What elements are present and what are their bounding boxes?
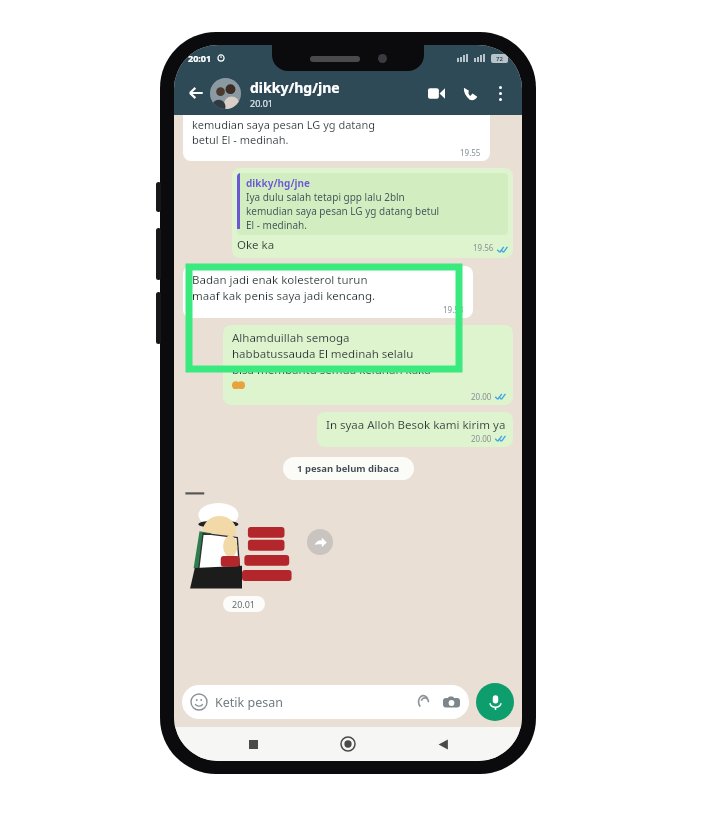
- button[interactable]: Back: [184, 81, 208, 105]
- staticText: kemudian saya pesan LG yg datang: [192, 117, 376, 132]
- button[interactable]: Voice call: [456, 79, 484, 107]
- button[interactable]: Profile photo: [210, 78, 241, 109]
- staticText: maaf kak penis saya jadi kencang.: [192, 288, 376, 304]
- staticText: 20.01: [232, 598, 256, 610]
- staticText: Alhamduillah semoga: [232, 330, 350, 346]
- staticText: 19.58: [443, 304, 464, 315]
- staticText: kemudian saya pesan LG yg datang betul: [246, 204, 440, 218]
- button[interactable]: dikky/hg/jne: [250, 78, 422, 109]
- staticText: dikky/hg/jne: [250, 78, 340, 97]
- staticText: 20.01: [250, 97, 274, 109]
- staticText: 1 pesan belum dibaca: [297, 462, 400, 475]
- button[interactable]: Badan jadi enak kolesterol turun: [183, 266, 473, 318]
- staticText: 19.56: [473, 242, 494, 253]
- staticText: bisa membantu semua keluhan kaka: [232, 362, 431, 378]
- staticText: 72: [496, 55, 503, 63]
- staticText: In syaa Alloh Besok kami kirim ya: [326, 417, 506, 433]
- button[interactable]: Back: [427, 728, 459, 760]
- staticText: betul El - medinah.: [192, 132, 289, 147]
- staticText: Oke ka: [237, 237, 275, 253]
- button[interactable]: Record voice message: [476, 683, 514, 721]
- staticText: 20.00: [471, 433, 492, 444]
- staticText: habbatussauda El medinah selalu: [232, 346, 414, 362]
- staticText: dikky/hg/jne: [246, 176, 310, 190]
- button[interactable]: dikky/hg/jne: [232, 168, 513, 258]
- button[interactable]: Home: [332, 728, 364, 760]
- button[interactable]: Ketik pesan: [182, 685, 469, 719]
- staticText: Ketik pesan: [215, 694, 283, 711]
- button[interactable]: More options: [488, 81, 512, 105]
- button[interactable]: Video call: [422, 79, 450, 107]
- button[interactable]: [183, 488, 301, 596]
- staticText: El - medinah.: [246, 218, 307, 232]
- staticText: 20:01: [188, 52, 212, 64]
- staticText: Iya dulu salah tetapi gpp lalu 2bln: [246, 190, 405, 204]
- staticText: 19.55: [460, 147, 481, 158]
- button[interactable]: Alhamduillah semoga: [223, 325, 513, 405]
- button[interactable]: Recents: [237, 728, 269, 760]
- staticText: Badan jadi enak kolesterol turun: [192, 272, 368, 288]
- button[interactable]: Forward: [307, 529, 333, 555]
- button[interactable]: kemudian saya pesan LG yg datang: [183, 115, 490, 161]
- staticText: 20.00: [471, 391, 492, 402]
- button[interactable]: In syaa Alloh Besok kami kirim ya: [317, 412, 513, 447]
